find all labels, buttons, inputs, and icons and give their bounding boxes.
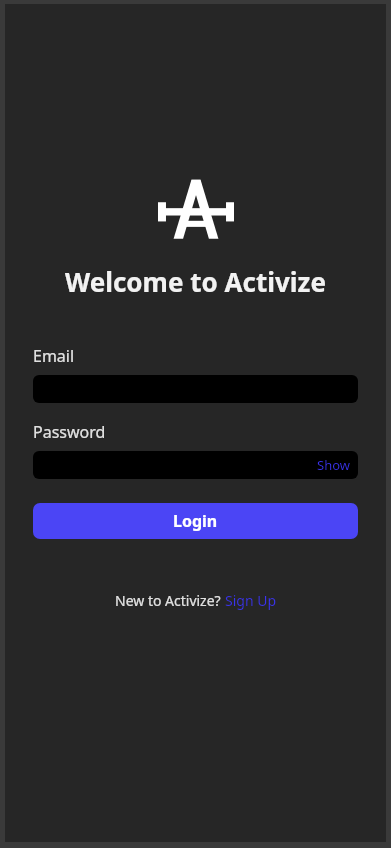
button[interactable]: Login bbox=[33, 503, 358, 539]
button[interactable]: Password input field bbox=[33, 451, 358, 479]
staticText: Email bbox=[33, 345, 75, 367]
staticText: Welcome to Activize bbox=[65, 264, 326, 299]
button[interactable]: Show bbox=[309, 452, 358, 478]
staticText: Login bbox=[173, 510, 218, 532]
staticText: New to Activize? bbox=[115, 591, 225, 610]
staticText: Sign Up bbox=[225, 591, 277, 610]
button[interactable]: Sign Up bbox=[225, 591, 277, 610]
staticText: Show bbox=[317, 456, 350, 474]
staticText: Password bbox=[33, 421, 106, 443]
